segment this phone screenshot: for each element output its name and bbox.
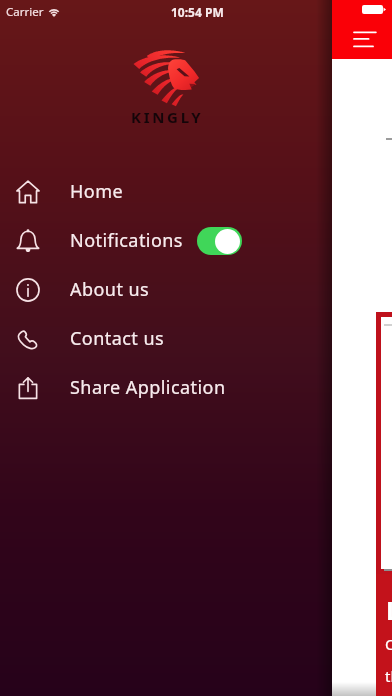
staticText: Notifications bbox=[70, 228, 183, 253]
staticText: About us bbox=[70, 277, 150, 302]
button[interactable]: Notifications toggle bbox=[197, 227, 242, 255]
staticText: Latest News bbox=[386, 593, 392, 627]
button[interactable]: Open navigation menu bbox=[353, 30, 379, 48]
staticText: Share Application bbox=[70, 375, 226, 400]
button[interactable] bbox=[376, 312, 392, 574]
button[interactable]: Home bbox=[0, 167, 332, 216]
staticText: the latest news bbox=[385, 666, 392, 686]
staticText: KINGLY bbox=[131, 107, 204, 127]
button[interactable]: Contact us bbox=[0, 314, 332, 363]
staticText: Home bbox=[70, 179, 124, 204]
button[interactable]: Share Application bbox=[0, 363, 332, 412]
staticText: Check out bbox=[385, 634, 392, 654]
staticText: 10:54 PM bbox=[171, 4, 224, 20]
staticText: Contact us bbox=[70, 326, 165, 351]
button[interactable]: Notifications bbox=[0, 216, 332, 265]
button[interactable]: About us bbox=[0, 265, 332, 314]
staticText: Carrier bbox=[6, 4, 44, 20]
